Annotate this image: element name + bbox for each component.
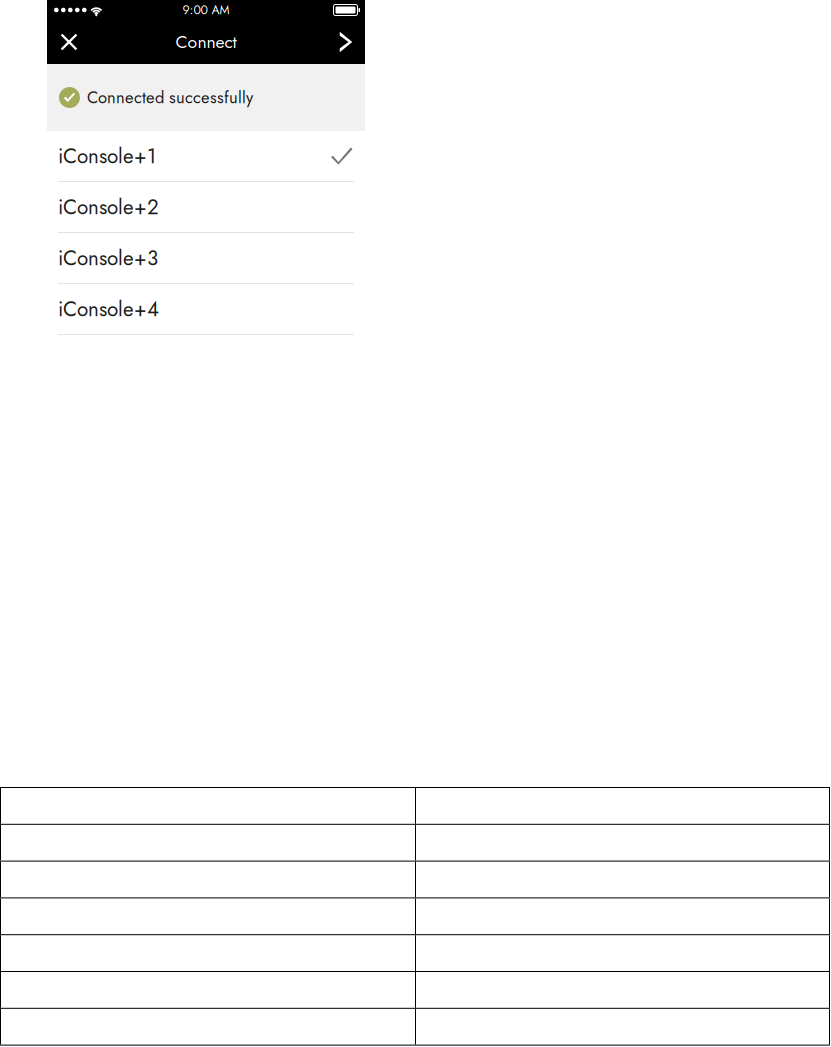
button[interactable]: iConsole+1 bbox=[47, 131, 365, 182]
button[interactable]: iConsole+2 bbox=[47, 182, 365, 233]
button[interactable]: iConsole+3 bbox=[47, 233, 365, 284]
staticText: Connect bbox=[175, 29, 236, 55]
button[interactable]: iConsole+4 bbox=[47, 284, 365, 335]
button[interactable]: Next bbox=[327, 20, 365, 64]
staticText: iConsole+4 bbox=[58, 294, 159, 324]
staticText: Connected successfully bbox=[87, 86, 253, 109]
staticText: 9:00 AM bbox=[182, 1, 229, 19]
staticText: iConsole+2 bbox=[58, 192, 159, 222]
staticText: iConsole+1 bbox=[58, 141, 156, 171]
staticText: iConsole+3 bbox=[58, 243, 158, 273]
button[interactable]: Close bbox=[47, 20, 91, 64]
